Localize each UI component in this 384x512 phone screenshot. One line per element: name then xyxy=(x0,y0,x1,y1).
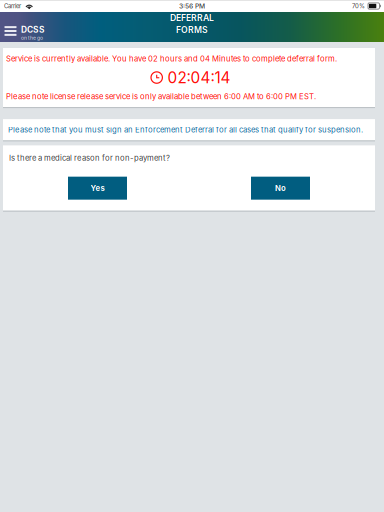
button[interactable]: No xyxy=(251,177,310,200)
staticText: FORMS xyxy=(176,24,208,35)
staticText: Please note that you must sign an Enforc… xyxy=(8,125,363,134)
staticText: Please note license release service is o… xyxy=(6,92,316,101)
staticText: DCSS xyxy=(21,25,45,35)
button[interactable]: Yes xyxy=(68,177,127,200)
staticText: 02:04:14 xyxy=(167,68,230,87)
button[interactable]: Open menu xyxy=(0,12,21,42)
staticText: No xyxy=(275,183,286,193)
button[interactable]: DCSS xyxy=(21,12,45,42)
staticText: Carrier xyxy=(4,2,21,10)
staticText: 70% xyxy=(352,2,365,10)
staticText: Is there a medical reason for non-paymen… xyxy=(9,153,170,163)
staticText: Service is currently available. You have… xyxy=(6,54,337,63)
staticText: Yes xyxy=(90,183,104,193)
staticText: 3:56 PM xyxy=(179,2,205,10)
staticText: DEFERRAL xyxy=(170,12,214,23)
staticText: on the go xyxy=(21,35,43,41)
